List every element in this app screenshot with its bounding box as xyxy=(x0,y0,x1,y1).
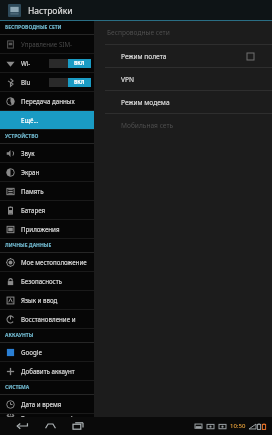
button[interactable]: Безопасность xyxy=(0,272,94,290)
staticText: Безопасность xyxy=(21,277,62,285)
button[interactable]: Звук xyxy=(0,144,94,162)
button[interactable]: ВКЛ xyxy=(49,59,91,68)
staticText: Беспроводные сети xyxy=(107,28,170,37)
staticText: Язык и ввод xyxy=(21,296,58,304)
button[interactable]: Передача данных xyxy=(0,92,94,110)
staticText: АККАУНТЫ xyxy=(5,332,34,339)
staticText: ВКЛ xyxy=(74,79,85,86)
staticText: Батарея xyxy=(21,206,46,214)
staticText: Мобильная сеть xyxy=(121,121,174,130)
staticText: Дата и время xyxy=(21,400,62,408)
button[interactable]: Режим модема xyxy=(94,91,272,113)
staticText: Экран xyxy=(21,168,40,176)
button[interactable]: Recent apps xyxy=(68,418,88,434)
button[interactable]: Батарея xyxy=(0,201,94,219)
staticText: Ещё... xyxy=(21,116,39,124)
button[interactable]: Wi-Fi xyxy=(0,54,94,72)
button[interactable]: Режим полета xyxy=(94,45,272,67)
staticText: Настройки xyxy=(28,5,73,17)
staticText: УСТРОЙСТВО xyxy=(5,133,39,140)
button[interactable]: Расписание вкл./выкл. п xyxy=(0,414,94,417)
button[interactable]: Приложения xyxy=(0,220,94,238)
button[interactable]: ВКЛ xyxy=(49,78,91,87)
button[interactable]: Память xyxy=(0,182,94,200)
button[interactable]: Восстановление и сброс xyxy=(0,310,94,328)
staticText: Режим полета xyxy=(121,52,167,61)
staticText: ВКЛ xyxy=(74,60,85,67)
button[interactable]: Back xyxy=(12,418,32,434)
button[interactable]: Мобильная сеть xyxy=(94,114,272,136)
staticText: СИСТЕМА xyxy=(5,384,30,391)
staticText: Bluetooth xyxy=(21,78,33,86)
button[interactable]: Home xyxy=(40,418,60,434)
button[interactable]: Мое местоположение xyxy=(0,253,94,271)
button[interactable]: Экран xyxy=(0,163,94,181)
staticText: Добавить аккаунт xyxy=(21,367,75,375)
button[interactable]: Добавить аккаунт xyxy=(0,362,94,380)
staticText: ЛИЧНЫЕ ДАННЫЕ xyxy=(5,242,52,249)
button[interactable]: Управление SIM-картами xyxy=(0,35,94,53)
button[interactable]: Ещё... xyxy=(0,111,94,129)
staticText: Расписание вкл./выкл. п xyxy=(21,414,91,417)
staticText: Режим модема xyxy=(121,98,170,107)
button[interactable]: Google xyxy=(0,343,94,361)
staticText: Управление SIM-картами xyxy=(21,40,91,48)
staticText: Мое местоположение xyxy=(21,258,87,266)
staticText: Передача данных xyxy=(21,97,75,105)
button[interactable]: VPN xyxy=(94,68,272,90)
staticText: VPN xyxy=(121,75,134,84)
staticText: Звук xyxy=(21,149,35,157)
staticText: Восстановление и сброс xyxy=(21,315,91,323)
button[interactable]: Bluetooth xyxy=(0,73,94,91)
staticText: Google xyxy=(21,348,42,356)
staticText: Wi-Fi xyxy=(21,59,33,67)
button[interactable]: Язык и ввод xyxy=(0,291,94,309)
staticText: Память xyxy=(21,187,44,195)
staticText: Приложения xyxy=(21,225,60,233)
staticText: 10:50 xyxy=(230,422,246,430)
button[interactable]: Дата и время xyxy=(0,395,94,413)
staticText: БЕСПРОВОДНЫЕ СЕТИ xyxy=(5,24,62,31)
